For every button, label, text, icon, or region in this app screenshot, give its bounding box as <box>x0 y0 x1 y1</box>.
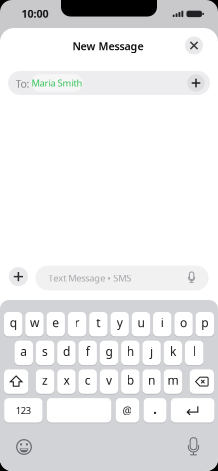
button[interactable]: t <box>89 312 108 336</box>
button[interactable]: y <box>110 312 129 336</box>
staticText: Maria Smith <box>31 77 82 89</box>
button[interactable]: i <box>153 312 171 336</box>
button[interactable]: Add attachment <box>9 267 28 286</box>
staticText: s <box>42 343 48 359</box>
button[interactable]: j <box>142 341 161 365</box>
button[interactable]: a <box>15 341 33 365</box>
button[interactable]: f <box>78 341 97 365</box>
button[interactable]: Maria Smith <box>31 74 83 92</box>
staticText: p <box>201 315 208 331</box>
button[interactable]: g <box>100 341 118 365</box>
staticText: a <box>20 343 27 359</box>
staticText: k <box>170 343 176 359</box>
button[interactable]: e <box>46 312 65 336</box>
button[interactable]: k <box>164 341 182 365</box>
button[interactable]: d <box>57 341 76 365</box>
button[interactable]: Space <box>47 398 111 422</box>
staticText: z <box>42 372 48 388</box>
staticText: l <box>193 343 196 359</box>
button[interactable]: h <box>121 341 139 365</box>
button[interactable]: x <box>57 369 76 394</box>
button[interactable]: Period <box>144 398 166 422</box>
button[interactable]: 123 <box>4 398 42 422</box>
button[interactable]: Add Contact <box>187 74 205 92</box>
button[interactable]: Text Message • SMS <box>35 266 209 290</box>
staticText: b <box>127 372 134 388</box>
staticText: d <box>63 343 70 359</box>
staticText: c <box>85 372 91 388</box>
button[interactable]: b <box>121 369 139 394</box>
staticText: o <box>180 315 187 331</box>
button[interactable]: s <box>36 341 54 365</box>
button[interactable]: Return <box>171 398 214 422</box>
staticText: q <box>10 315 17 331</box>
button[interactable]: z <box>36 369 54 394</box>
button[interactable]: Shift <box>4 369 28 394</box>
button[interactable]: Dictation <box>184 437 202 457</box>
staticText: y <box>117 315 123 331</box>
staticText: f <box>86 343 90 359</box>
button[interactable]: w <box>25 312 44 336</box>
staticText: e <box>52 315 59 331</box>
button[interactable]: r <box>68 312 86 336</box>
staticText: u <box>137 315 144 331</box>
button[interactable]: u <box>132 312 150 336</box>
button[interactable]: c <box>78 369 97 394</box>
staticText: m <box>167 372 178 388</box>
button[interactable]: v <box>100 369 118 394</box>
button[interactable]: Delete <box>190 369 214 394</box>
staticText: j <box>150 343 153 359</box>
button[interactable]: p <box>196 312 214 336</box>
button[interactable]: n <box>142 369 161 394</box>
staticText: r <box>75 315 80 331</box>
button[interactable]: q <box>4 312 22 336</box>
staticText: v <box>106 372 112 388</box>
button[interactable]: o <box>174 312 193 336</box>
staticText: t <box>96 315 100 331</box>
staticText: w <box>30 315 39 331</box>
staticText: 10:00 <box>21 6 48 21</box>
button[interactable]: Emoji <box>15 438 33 456</box>
staticText: New Message <box>72 39 143 53</box>
button[interactable]: @ <box>116 398 139 422</box>
button[interactable]: m <box>164 369 182 394</box>
staticText: @ <box>122 403 132 417</box>
button[interactable]: l <box>185 341 203 365</box>
staticText: Text Message • SMS <box>48 272 131 284</box>
button[interactable]: Close <box>185 36 203 54</box>
staticText: To: <box>15 76 29 91</box>
staticText: i <box>161 315 164 331</box>
staticText: n <box>148 372 155 388</box>
staticText: h <box>127 343 134 359</box>
staticText: x <box>63 372 69 388</box>
staticText: 123 <box>16 404 31 416</box>
staticText: g <box>105 343 112 359</box>
